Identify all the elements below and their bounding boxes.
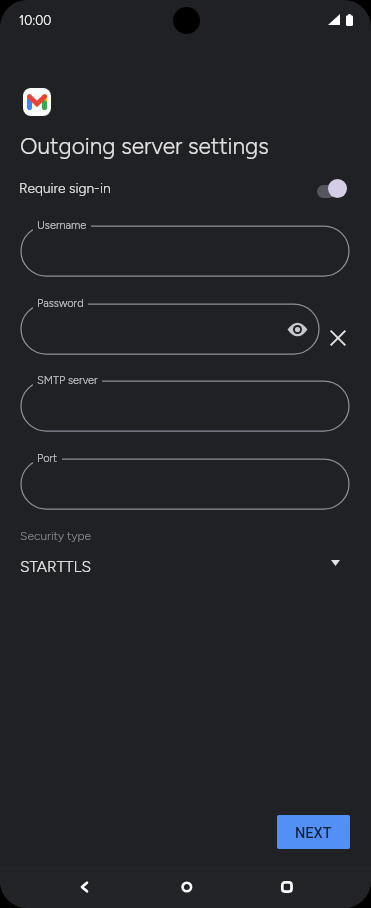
staticText: Password	[37, 297, 84, 310]
button[interactable]: Home	[175, 876, 197, 898]
staticText: STARTTLS	[20, 557, 91, 576]
button[interactable]: Back	[73, 876, 95, 898]
staticText: Port	[37, 452, 58, 465]
button[interactable]	[317, 178, 346, 198]
staticText: 10:00	[19, 13, 52, 28]
staticText: SMTP server	[37, 374, 98, 387]
button[interactable]: Clear	[328, 328, 348, 348]
button[interactable]: Show password	[287, 319, 308, 340]
staticText: Require sign-in	[19, 180, 111, 197]
staticText: NEXT	[295, 825, 332, 842]
staticText: Username	[37, 219, 87, 232]
button[interactable]: Port	[21, 459, 349, 509]
staticText: Security type	[20, 529, 92, 543]
button[interactable]: Require sign-in	[19, 172, 346, 204]
button[interactable]: NEXT	[277, 815, 350, 849]
button[interactable]: Password	[21, 304, 319, 354]
button[interactable]: Username	[21, 226, 349, 276]
button[interactable]: STARTTLS	[20, 552, 340, 580]
button[interactable]: SMTP server	[21, 381, 349, 431]
staticText: Outgoing server settings	[20, 132, 269, 159]
button[interactable]: Recents	[275, 876, 297, 898]
